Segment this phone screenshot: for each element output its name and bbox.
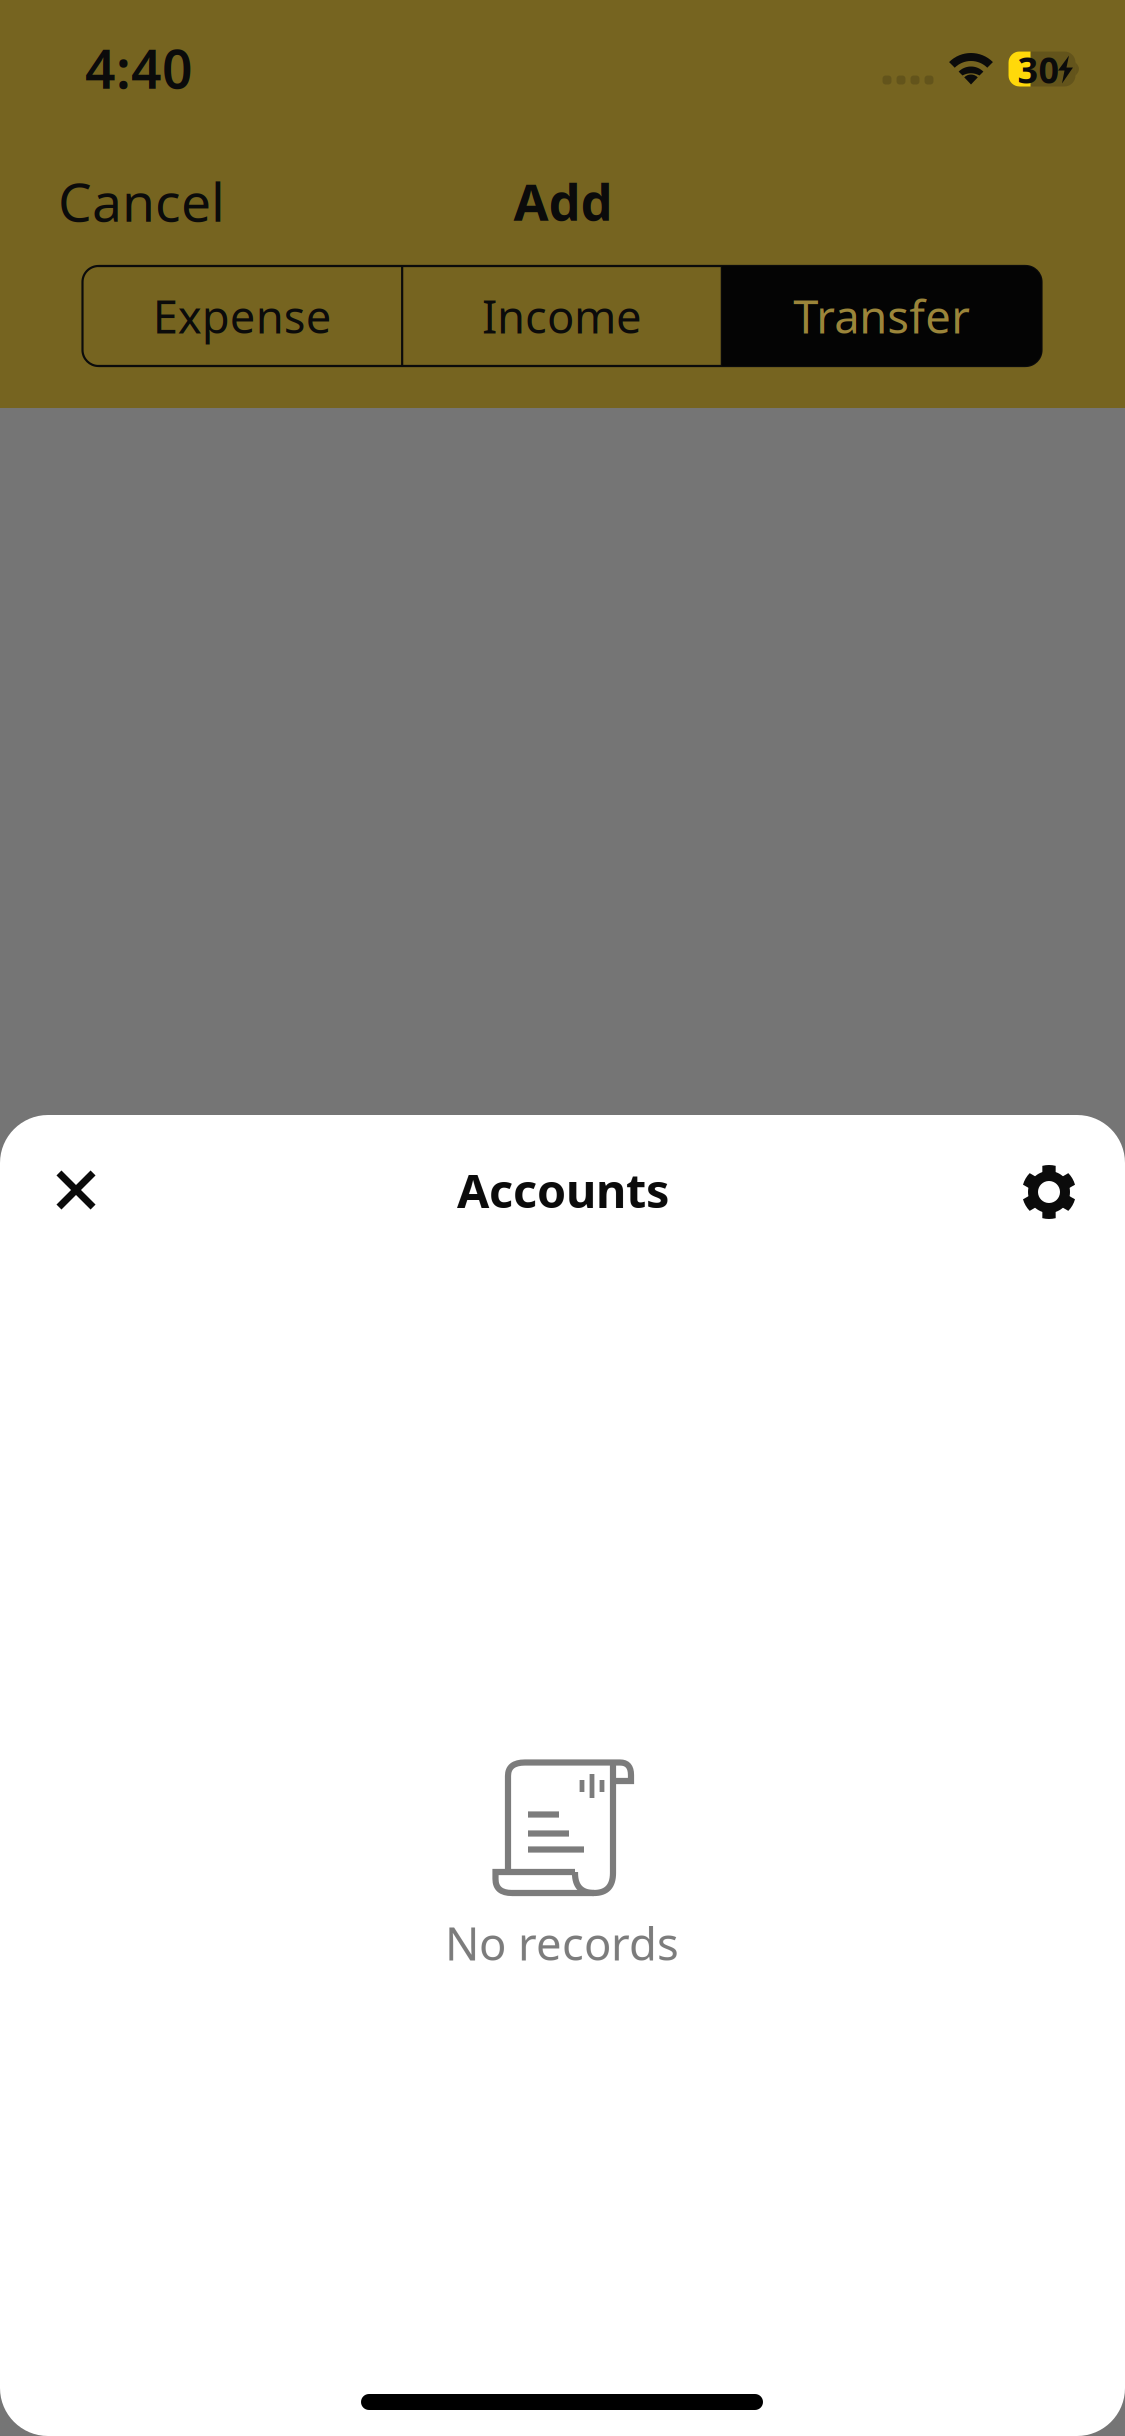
button[interactable]: Expense [82,266,402,366]
staticText: Transfer [793,286,970,346]
button[interactable]: Transfer [722,266,1041,366]
staticText: 30 [1017,46,1059,93]
staticText: Income [482,286,642,346]
staticText: Accounts [457,1159,669,1221]
staticText: 4:40 [85,33,193,103]
button[interactable]: Settings [1001,1144,1097,1240]
button[interactable]: Cancel [58,155,238,247]
staticText: Add [513,167,612,235]
staticText: Expense [153,286,332,346]
staticText: Cancel [58,166,225,236]
staticText: No records [445,1913,679,1973]
button[interactable]: Income [402,266,722,366]
button[interactable]: Close [28,1142,124,1238]
